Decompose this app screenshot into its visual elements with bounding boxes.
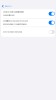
staticText: Show items such as addresses and — [3, 20, 28, 22]
button[interactable]: Clipboard — [0, 3, 11, 9]
staticText: Sync recent screenshots — [3, 31, 22, 33]
staticText: Clipboard — [4, 5, 11, 7]
button[interactable]: Sync recent screenshots — [1, 27, 55, 37]
staticText: Show recently copied items in the — [3, 11, 24, 13]
staticText: suggestions bar — [3, 14, 15, 16]
button[interactable]: Show recently copied items in the — [1, 9, 55, 18]
button[interactable]: Show items such as addresses and — [1, 18, 55, 27]
staticText: phone numbers copied from apps — [3, 23, 27, 25]
